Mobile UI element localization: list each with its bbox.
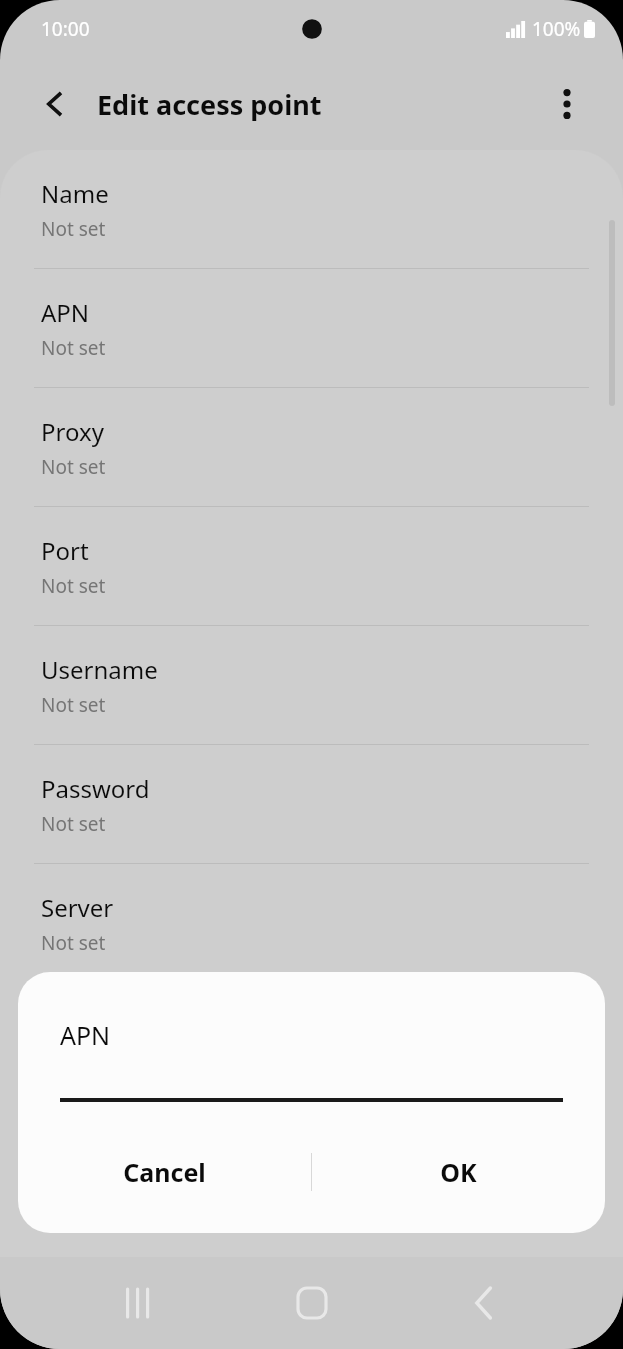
staticText: 10:00 xyxy=(41,16,90,42)
staticText: Proxy xyxy=(41,415,104,448)
button[interactable]: More options xyxy=(539,76,595,132)
staticText: 100% xyxy=(532,16,581,42)
staticText: Not set xyxy=(41,930,106,956)
button[interactable]: Server xyxy=(0,864,623,982)
staticText: Username xyxy=(41,653,158,686)
staticText: APN xyxy=(41,296,90,329)
staticText: Server xyxy=(41,891,114,924)
staticText: Port xyxy=(41,534,89,567)
button[interactable]: OK xyxy=(312,1135,605,1209)
button[interactable]: Port xyxy=(0,507,623,625)
staticText: Not set xyxy=(41,692,106,718)
staticText: Name xyxy=(41,177,109,210)
button[interactable]: Back xyxy=(451,1270,517,1336)
staticText: Not set xyxy=(41,573,106,599)
staticText: Not set xyxy=(41,216,106,242)
button[interactable]: Home xyxy=(279,1270,345,1336)
button[interactable]: Name xyxy=(0,150,623,268)
staticText: Not set xyxy=(41,811,106,837)
button[interactable]: MMSC xyxy=(0,983,623,1101)
button[interactable]: Cancel xyxy=(18,1135,311,1209)
button[interactable]: Recent apps xyxy=(106,1270,172,1336)
button[interactable]: APN xyxy=(0,269,623,387)
button[interactable]: Back xyxy=(26,75,84,133)
staticText: Cancel xyxy=(123,1155,206,1189)
staticText: APN xyxy=(60,1018,111,1052)
button[interactable]: Password xyxy=(0,745,623,863)
staticText: Not set xyxy=(41,335,106,361)
staticText: Password xyxy=(41,772,150,805)
staticText: MMSC xyxy=(41,1010,113,1043)
button[interactable]: Username xyxy=(0,626,623,744)
button[interactable]: Proxy xyxy=(0,388,623,506)
staticText: OK xyxy=(440,1155,477,1189)
staticText: Edit access point xyxy=(97,86,322,123)
staticText: Not set xyxy=(41,454,106,480)
button[interactable]: MMS proxy xyxy=(0,1102,623,1220)
